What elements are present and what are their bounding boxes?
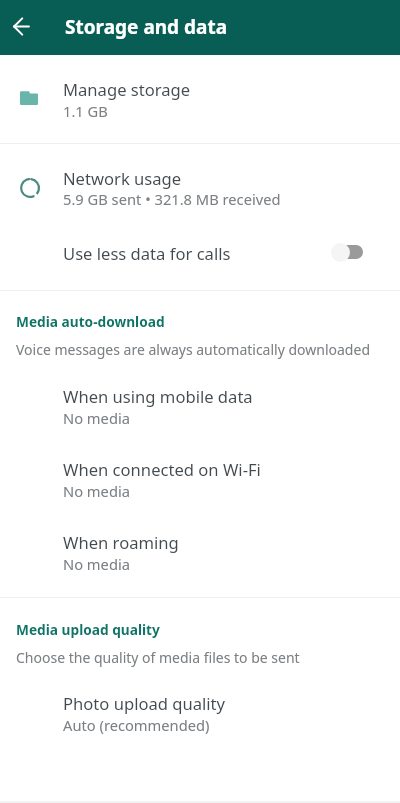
button[interactable]: Back bbox=[13, 18, 30, 35]
staticText: 5.9 GB sent • 321.8 MB received bbox=[63, 189, 281, 209]
button[interactable]: Manage storage bbox=[0, 55, 400, 142]
staticText: When connected on Wi-Fi bbox=[63, 458, 261, 481]
staticText: 1.1 GB bbox=[63, 101, 108, 121]
button[interactable]: Use less data for calls bbox=[0, 222, 400, 289]
staticText: Manage storage bbox=[63, 78, 191, 101]
staticText: When roaming bbox=[63, 531, 179, 554]
staticText: Auto (recommended) bbox=[63, 715, 210, 735]
staticText: No media bbox=[63, 481, 130, 501]
staticText: No media bbox=[63, 408, 130, 428]
button[interactable]: Photo upload quality bbox=[0, 667, 400, 740]
staticText: Voice messages are always automatically … bbox=[16, 340, 370, 359]
staticText: Network usage bbox=[63, 167, 182, 190]
button[interactable]: When using mobile data bbox=[0, 360, 400, 433]
button[interactable]: When connected on Wi-Fi bbox=[0, 433, 400, 506]
button[interactable]: When roaming bbox=[0, 506, 400, 579]
staticText: When using mobile data bbox=[63, 385, 253, 408]
button[interactable]: Network usage bbox=[0, 143, 400, 222]
staticText: Storage and data bbox=[65, 14, 228, 40]
staticText: Choose the quality of media files to be … bbox=[16, 648, 300, 667]
staticText: Media auto-download bbox=[16, 312, 165, 331]
staticText: No media bbox=[63, 554, 130, 574]
staticText: Media upload quality bbox=[16, 620, 160, 639]
staticText: Use less data for calls bbox=[63, 242, 231, 265]
staticText: Photo upload quality bbox=[63, 692, 226, 715]
